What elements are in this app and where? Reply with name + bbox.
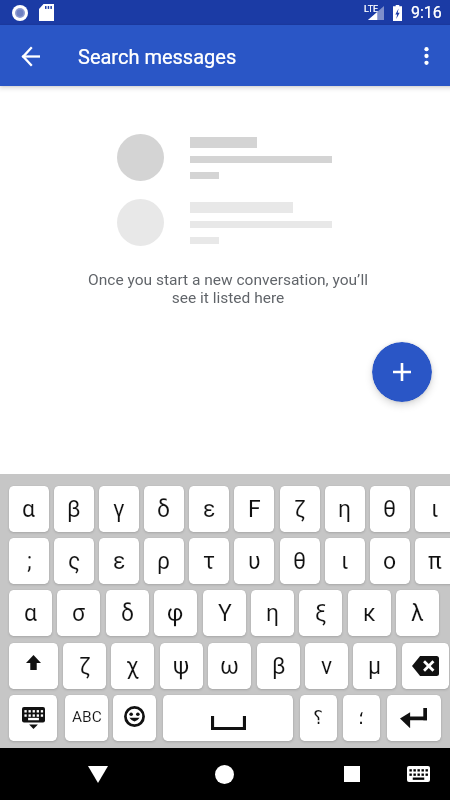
button[interactable]: δ xyxy=(106,590,149,636)
button[interactable]: λ xyxy=(396,590,439,636)
button[interactable]: Delete xyxy=(402,643,449,689)
button[interactable]: π xyxy=(415,538,450,584)
button[interactable]: Recent apps xyxy=(328,750,376,798)
staticText: δ xyxy=(157,496,171,523)
button[interactable]: χ xyxy=(111,643,154,689)
staticText: α xyxy=(22,496,36,523)
staticText: β xyxy=(67,496,81,523)
staticText: ω xyxy=(220,653,239,680)
button[interactable]: Start chat xyxy=(372,342,432,402)
staticText: σ xyxy=(72,600,86,627)
button[interactable]: ς xyxy=(54,538,94,584)
button[interactable]: σ xyxy=(57,590,100,636)
button[interactable]: η xyxy=(251,590,294,636)
button[interactable]: θ xyxy=(370,486,410,532)
button[interactable]: Shift xyxy=(9,643,58,689)
button[interactable]: υ xyxy=(234,538,274,584)
button[interactable]: θ xyxy=(280,538,320,584)
button[interactable]: Navigate up xyxy=(7,32,55,80)
staticText: φ xyxy=(167,600,184,627)
staticText: Υ xyxy=(218,600,232,627)
staticText: θ xyxy=(383,496,397,523)
staticText: ε xyxy=(203,496,216,523)
staticText: δ xyxy=(121,600,135,627)
staticText: χ xyxy=(126,653,139,680)
button[interactable]: τ xyxy=(189,538,229,584)
button[interactable]: ω xyxy=(208,643,251,689)
staticText: α xyxy=(24,600,38,627)
staticText: θ xyxy=(293,548,307,575)
staticText: η xyxy=(266,600,280,627)
button[interactable]: Back xyxy=(74,750,122,798)
staticText: ψ xyxy=(173,653,190,680)
staticText: ζ xyxy=(294,496,306,523)
button[interactable]: α xyxy=(9,590,52,636)
button[interactable]: ν xyxy=(305,643,348,689)
button[interactable]: Hide keyboard xyxy=(9,695,57,741)
staticText: γ xyxy=(113,496,125,523)
button[interactable]: Υ xyxy=(203,590,246,636)
staticText: η xyxy=(338,496,352,523)
button[interactable]: κ xyxy=(348,590,391,636)
staticText: ABC xyxy=(72,708,102,726)
button[interactable]: ξ xyxy=(299,590,342,636)
staticText: κ xyxy=(363,600,376,627)
button[interactable]: β xyxy=(257,643,300,689)
button[interactable]: μ xyxy=(353,643,396,689)
button[interactable]: ; xyxy=(9,538,49,584)
staticText: ؟ xyxy=(313,706,324,728)
button[interactable]: ι xyxy=(415,486,450,532)
staticText: LTE xyxy=(364,4,379,15)
button[interactable]: γ xyxy=(99,486,139,532)
staticText: π xyxy=(428,548,442,575)
button[interactable]: ρ xyxy=(144,538,184,584)
staticText: ؛ xyxy=(358,706,365,728)
staticText: Once you start a new conversation, you’l… xyxy=(3,271,450,307)
button[interactable]: β xyxy=(54,486,94,532)
staticText: ε xyxy=(113,548,126,575)
staticText: ξ xyxy=(315,600,327,627)
button[interactable]: ο xyxy=(370,538,410,584)
staticText: ζ xyxy=(79,653,91,680)
button[interactable]: ABC xyxy=(65,695,108,741)
button[interactable]: More options xyxy=(402,32,450,80)
button[interactable]: ε xyxy=(189,486,229,532)
staticText: 9:16 xyxy=(411,3,442,22)
button[interactable]: η xyxy=(325,486,365,532)
button[interactable]: ι xyxy=(325,538,365,584)
button[interactable]: ؛ xyxy=(343,695,380,741)
button[interactable]: ζ xyxy=(280,486,320,532)
staticText: ν xyxy=(321,653,333,680)
button[interactable]: ψ xyxy=(160,643,203,689)
button[interactable]: ؟ xyxy=(300,695,337,741)
staticText: ι xyxy=(431,496,439,523)
staticText: ο xyxy=(383,548,397,575)
staticText: λ xyxy=(411,600,424,627)
staticText: μ xyxy=(368,653,382,680)
button[interactable]: δ xyxy=(144,486,184,532)
button[interactable]: Space xyxy=(163,695,293,741)
button[interactable]: φ xyxy=(154,590,197,636)
button[interactable]: Emoji xyxy=(113,695,156,741)
staticText: ς xyxy=(68,548,81,575)
staticText: ρ xyxy=(157,548,171,575)
staticText: τ xyxy=(203,548,215,575)
button[interactable]: ε xyxy=(99,538,139,584)
staticText: β xyxy=(272,653,286,680)
button[interactable]: F xyxy=(234,486,274,532)
button[interactable]: ζ xyxy=(63,643,106,689)
button[interactable]: Enter xyxy=(387,695,441,741)
staticText: υ xyxy=(248,548,261,575)
button[interactable]: α xyxy=(9,486,49,532)
staticText: F xyxy=(248,496,261,523)
button[interactable]: Change keyboard xyxy=(394,750,442,798)
staticText: ι xyxy=(341,548,349,575)
staticText: ; xyxy=(27,548,32,575)
button[interactable]: Home xyxy=(200,750,248,798)
staticText: Search messages xyxy=(78,45,237,68)
